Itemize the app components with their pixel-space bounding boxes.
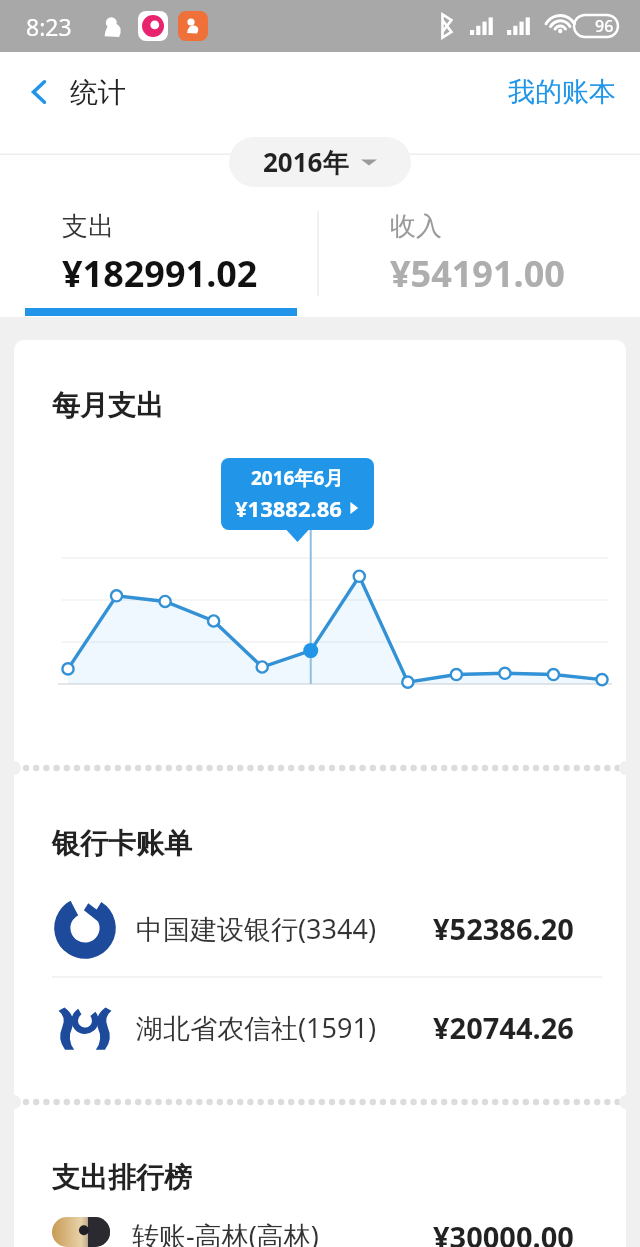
staticText: 8:23 [26, 11, 72, 42]
staticText: 湖北省农信社(1591) [136, 1009, 433, 1046]
button[interactable]: 中国建设银行(3344) [14, 879, 626, 977]
staticText: ¥54191.00 [390, 249, 565, 298]
staticText: 收入 [390, 210, 442, 243]
button[interactable]: 转账-高林(高林) [14, 1217, 626, 1247]
staticText: ¥13882.86 [235, 493, 342, 523]
button[interactable]: 我的账本 [484, 63, 640, 121]
staticText: 2016年6月 [251, 465, 344, 491]
button[interactable]: 2016年 [229, 137, 411, 187]
button[interactable]: 收入 [320, 194, 640, 317]
staticText: ¥52386.20 [433, 909, 574, 948]
staticText: 支出排行榜 [52, 1160, 192, 1195]
staticText: 转账-高林(高林) [132, 1217, 319, 1247]
staticText: 中国建设银行(3344) [136, 910, 433, 947]
staticText: 统计 [70, 75, 126, 110]
staticText: 2016年 [263, 144, 349, 180]
staticText: ¥20744.26 [433, 1008, 574, 1047]
staticText: 银行卡账单 [52, 826, 192, 861]
staticText: ¥182991.02 [62, 249, 258, 298]
button[interactable]: 2016年6月 [221, 458, 374, 530]
staticText: 每月支出 [52, 388, 164, 423]
button[interactable]: 支出 [0, 194, 320, 317]
staticText: 支出 [62, 210, 114, 243]
staticText: ¥30000.00 [433, 1217, 574, 1247]
button[interactable]: Back [0, 62, 138, 122]
other: Back [22, 75, 56, 109]
button[interactable]: 湖北省农信社(1591) [14, 978, 626, 1076]
staticText: 96 [595, 15, 614, 37]
